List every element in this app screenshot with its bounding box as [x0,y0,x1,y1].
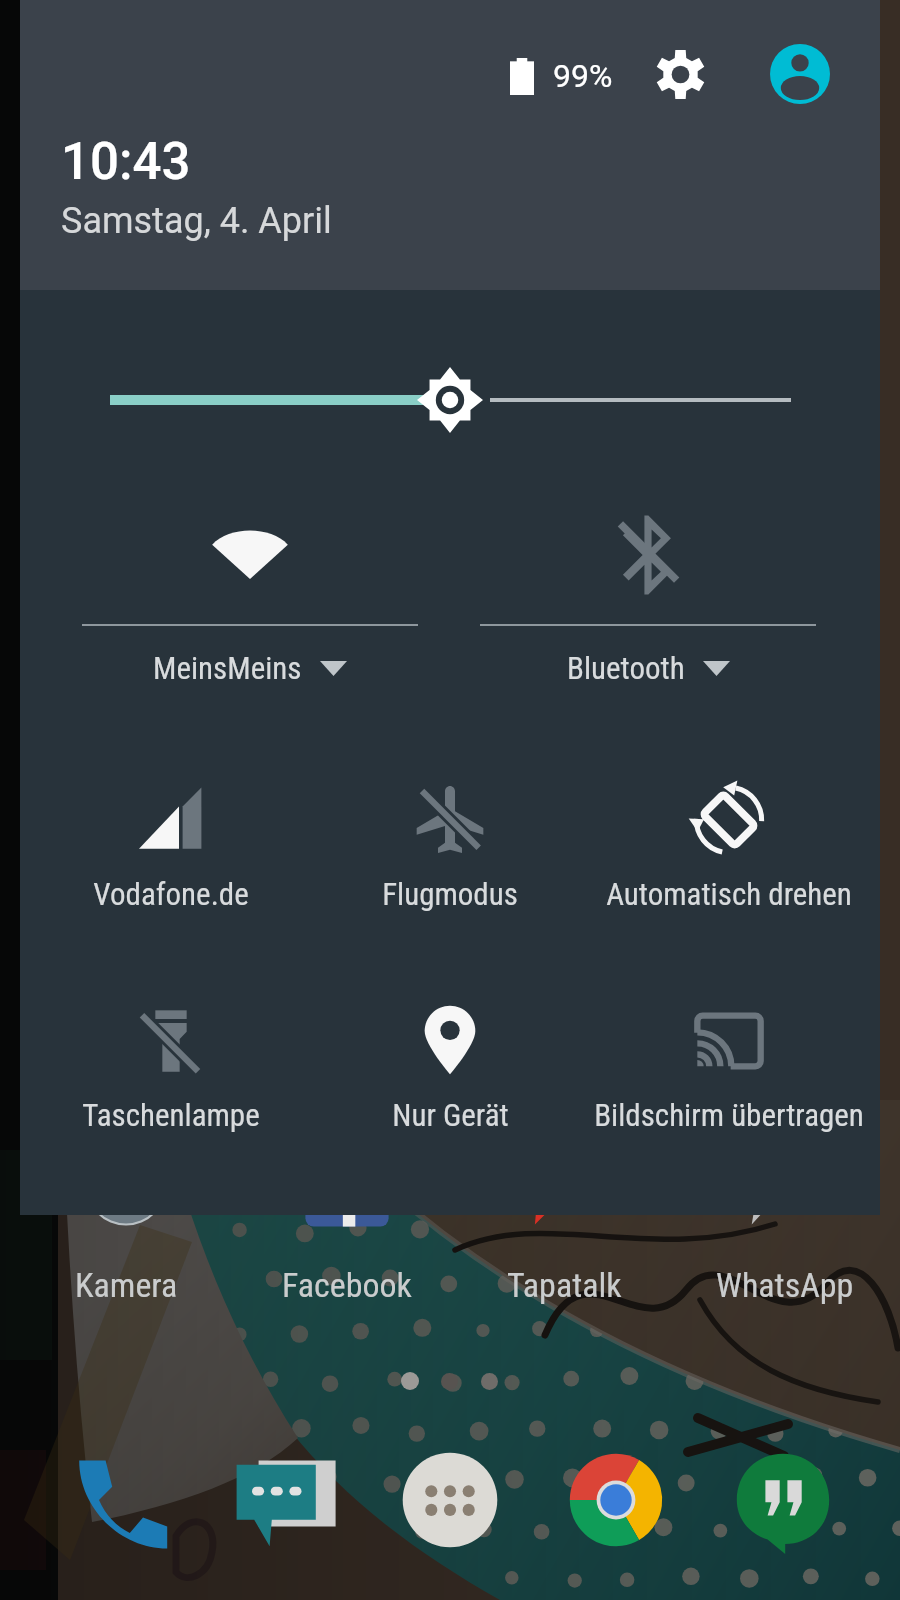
button[interactable]: Automatisch drehen [589,780,869,912]
button[interactable]: Nur Gerät [310,1001,590,1133]
button[interactable]: MeinsMeins [82,512,418,686]
button[interactable]: Settings [655,49,706,100]
button[interactable]: Bluetooth [480,512,816,686]
button[interactable]: Messages [210,1425,360,1575]
staticText: 99% [553,57,613,95]
staticText: MeinsMeins [153,650,302,686]
button[interactable]: All apps [375,1425,525,1575]
staticText: Facebook [282,1265,412,1305]
button[interactable]: Bildschirm übertragen [589,1001,869,1133]
button[interactable]: Kamera [36,1133,216,1305]
button[interactable]: User profile [770,44,830,104]
staticText: Flugmodus [382,876,518,912]
button[interactable]: Chrome [541,1425,691,1575]
button[interactable]: Flugmodus [310,780,590,912]
staticText: Vodafone.de [93,876,249,912]
staticText: Nur Gerät [392,1097,509,1133]
staticText: Bildschirm übertragen [594,1097,864,1133]
staticText: Kamera [75,1265,178,1305]
staticText: Bluetooth [567,650,685,686]
staticText: Tapatalk [507,1265,622,1305]
staticText: Samstag, 4. April [61,200,332,242]
button[interactable]: Facebook [257,1133,437,1305]
button[interactable]: Taschenlampe [31,1001,311,1133]
button[interactable]: WhatsApp [695,1133,875,1305]
staticText: WhatsApp [716,1265,854,1305]
staticText: Taschenlampe [82,1097,260,1133]
button[interactable]: Vodafone.de [31,780,311,912]
button[interactable]: Hangouts [708,1425,858,1575]
staticText: Automatisch drehen [606,876,852,912]
button[interactable]: Tapatalk [474,1133,654,1305]
button[interactable]: Phone [46,1425,196,1575]
staticText: 10:43 [61,132,191,192]
